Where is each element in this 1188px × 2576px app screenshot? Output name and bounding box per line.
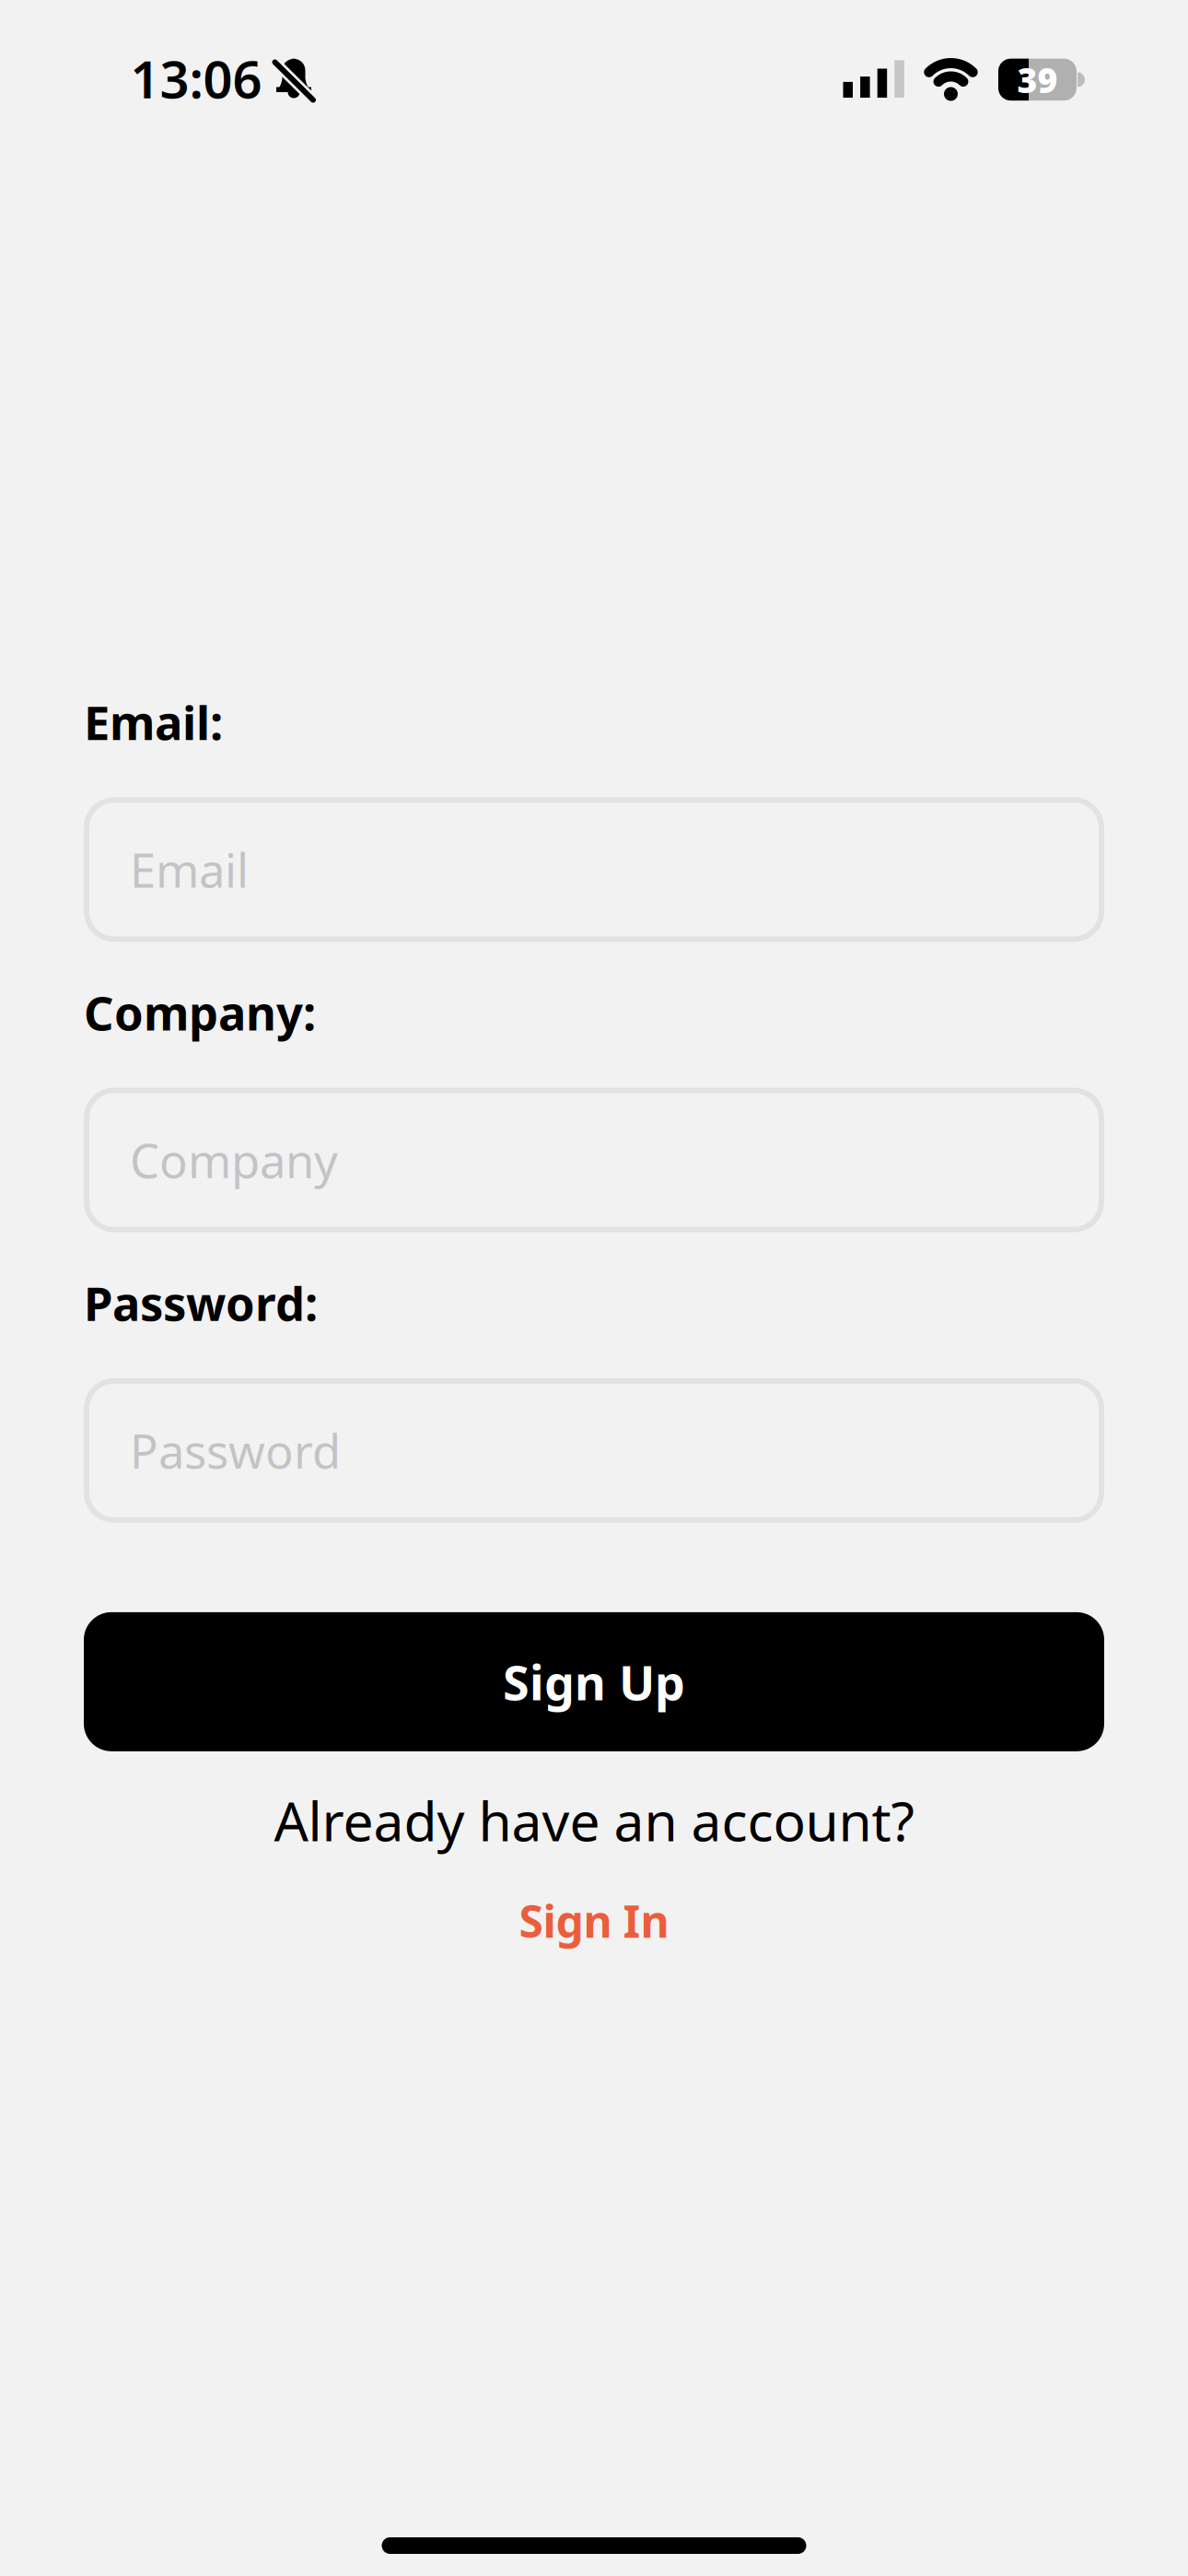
- staticText: Password:: [84, 1272, 318, 1334]
- button[interactable]: Sign In: [519, 1891, 669, 1950]
- staticText: Sign Up: [503, 1650, 685, 1714]
- staticText: Company:: [84, 981, 316, 1043]
- staticText: Company: [130, 1129, 338, 1191]
- staticText: Email:: [84, 691, 223, 753]
- staticText: 13:06: [130, 44, 262, 113]
- button[interactable]: Sign Up: [84, 1612, 1104, 1751]
- staticText: 39: [1017, 57, 1058, 102]
- staticText: Already have an account?: [274, 1784, 914, 1856]
- staticText: Sign In: [519, 1891, 669, 1950]
- textField[interactable]: Email: [84, 797, 1104, 942]
- staticText: Password: [130, 1419, 341, 1481]
- textField[interactable]: Password: [84, 1378, 1104, 1523]
- textField[interactable]: Company: [84, 1088, 1104, 1232]
- staticText: Email: [130, 838, 249, 900]
